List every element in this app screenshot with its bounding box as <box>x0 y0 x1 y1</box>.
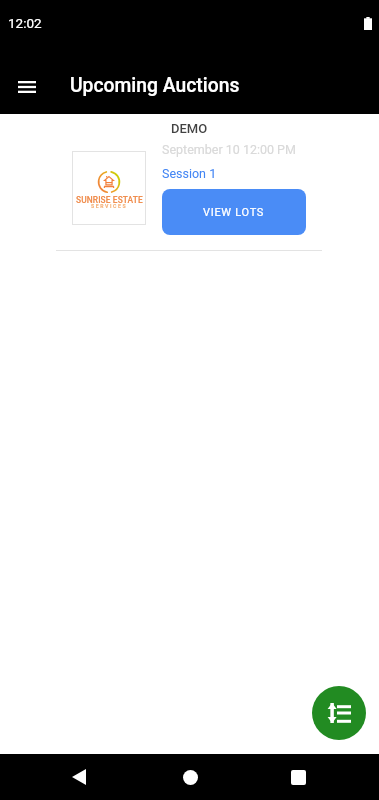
staticText: Session 1 <box>162 166 217 181</box>
staticText: 12:02 <box>8 15 42 31</box>
staticText: SERVICES <box>91 203 128 209</box>
button[interactable]: Recents <box>274 754 322 800</box>
button[interactable]: Menu <box>5 65 49 109</box>
staticText: Upcoming Auctions <box>70 74 240 97</box>
button[interactable]: Session 1 <box>162 166 217 181</box>
button[interactable]: VIEW LOTS <box>162 189 306 235</box>
staticText: VIEW LOTS <box>203 206 265 219</box>
staticText: September 10 12:00 PM <box>162 142 296 157</box>
staticText: SUNRISE ESTATE <box>76 195 143 205</box>
staticText: DEMO <box>171 121 208 136</box>
button[interactable]: Back <box>55 754 103 800</box>
button[interactable]: Home <box>166 754 214 800</box>
button[interactable]: Sort <box>312 686 366 740</box>
button[interactable]: Sunrise Estate Services auction <box>72 151 146 225</box>
